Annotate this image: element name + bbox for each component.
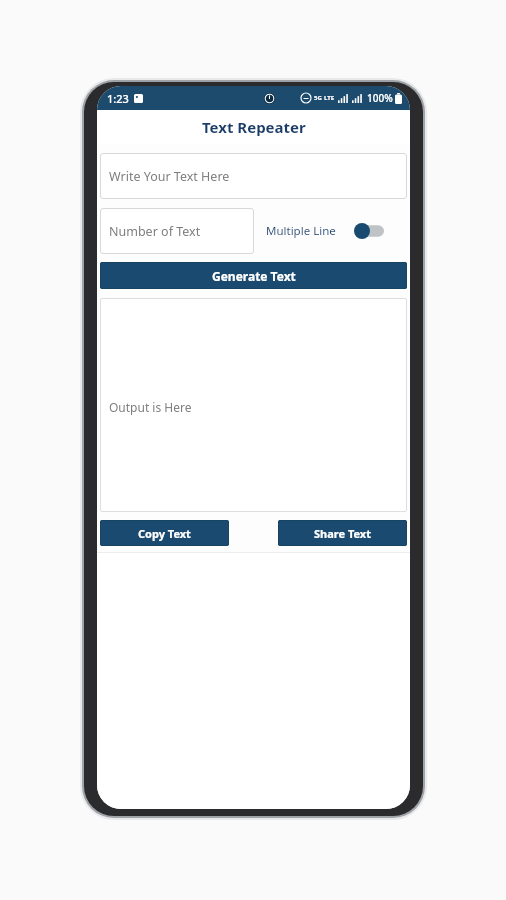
button[interactable]: Number of Text [100, 208, 254, 254]
button[interactable]: Output is Here [100, 298, 407, 512]
button[interactable]: Copy Text [100, 520, 229, 546]
staticText: Text Repeater [202, 117, 306, 137]
staticText: Number of Text [109, 223, 201, 240]
button[interactable]: Generate Text [100, 262, 407, 289]
button[interactable]: Share Text [278, 520, 407, 546]
staticText: Write Your Text Here [109, 168, 230, 185]
staticText: 1:23 [107, 91, 129, 106]
staticText: 100% [367, 91, 393, 105]
staticText: Generate Text [212, 268, 296, 284]
staticText: Copy Text [138, 526, 191, 541]
button[interactable]: Write Your Text Here [100, 153, 407, 199]
staticText: Share Text [314, 526, 371, 541]
staticText: Multiple Line [266, 223, 336, 239]
staticText: Output is Here [109, 399, 192, 415]
staticText: 5G [314, 94, 322, 102]
button[interactable]: Multiple Line toggle [354, 223, 384, 239]
staticText: LTE [324, 94, 335, 102]
